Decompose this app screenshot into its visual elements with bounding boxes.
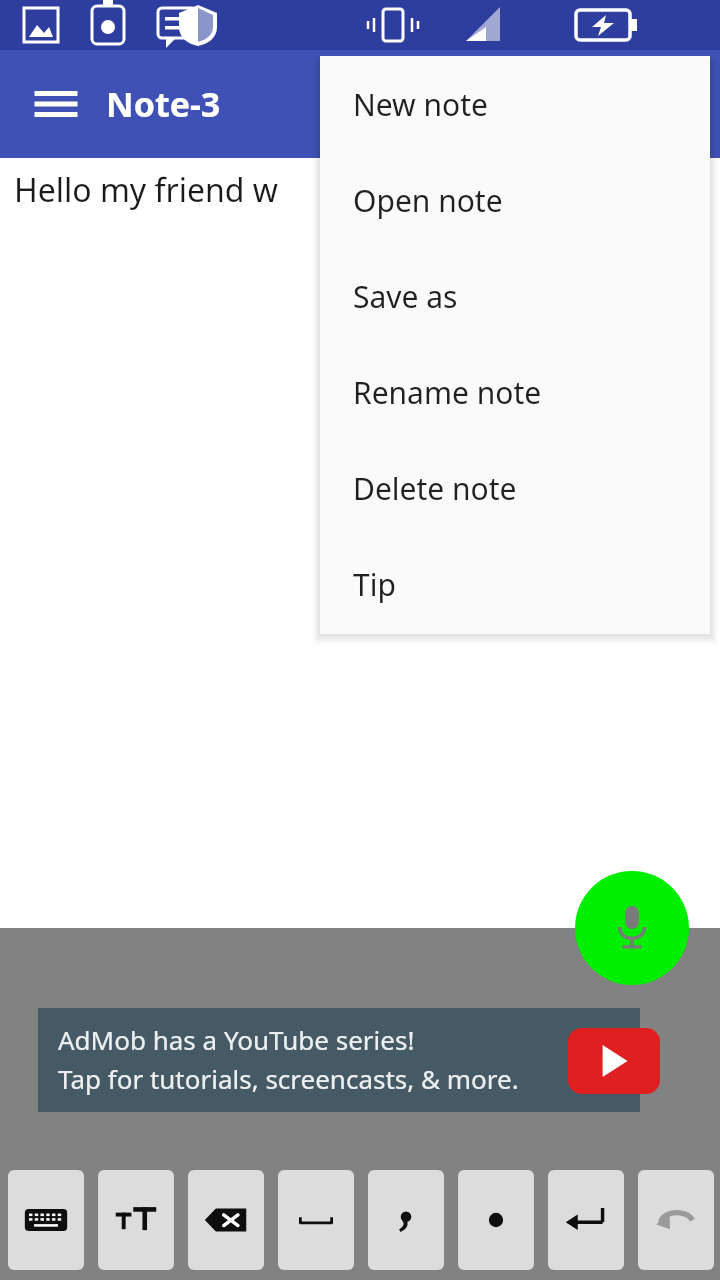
staticText: Note-3 [106, 81, 221, 127]
staticText: Hello my friend w [14, 168, 278, 212]
button[interactable]: Undo [638, 1170, 714, 1270]
staticText: Tap for tutorials, screencasts, & more. [58, 1061, 519, 1096]
staticText: New note [353, 84, 488, 125]
button[interactable]: Enter [548, 1170, 624, 1270]
button[interactable]: Text size [98, 1170, 174, 1270]
button[interactable]: Save as [320, 248, 710, 344]
button[interactable]: New note [320, 56, 710, 152]
staticText: Save as [353, 276, 458, 317]
staticText: AdMob has a YouTube series! [58, 1022, 415, 1057]
button[interactable]: Backspace [188, 1170, 264, 1270]
button[interactable]: AdMob has a YouTube series! [38, 1008, 640, 1112]
button[interactable]: Period [458, 1170, 534, 1270]
button[interactable]: Comma [368, 1170, 444, 1270]
button[interactable]: Rename note [320, 344, 710, 440]
button[interactable]: Delete note [320, 440, 710, 536]
staticText: Open note [353, 180, 503, 221]
button[interactable]: Open note [320, 152, 710, 248]
staticText: Delete note [353, 468, 517, 509]
button[interactable]: Open navigation drawer [20, 68, 92, 140]
staticText: Tip [353, 564, 396, 605]
staticText: Rename note [353, 372, 542, 413]
button[interactable]: Keyboard [8, 1170, 84, 1270]
button[interactable]: Voice input [575, 871, 689, 985]
button[interactable]: Space [278, 1170, 354, 1270]
other: YouTube [568, 1028, 660, 1094]
button[interactable]: Tip [320, 536, 710, 632]
